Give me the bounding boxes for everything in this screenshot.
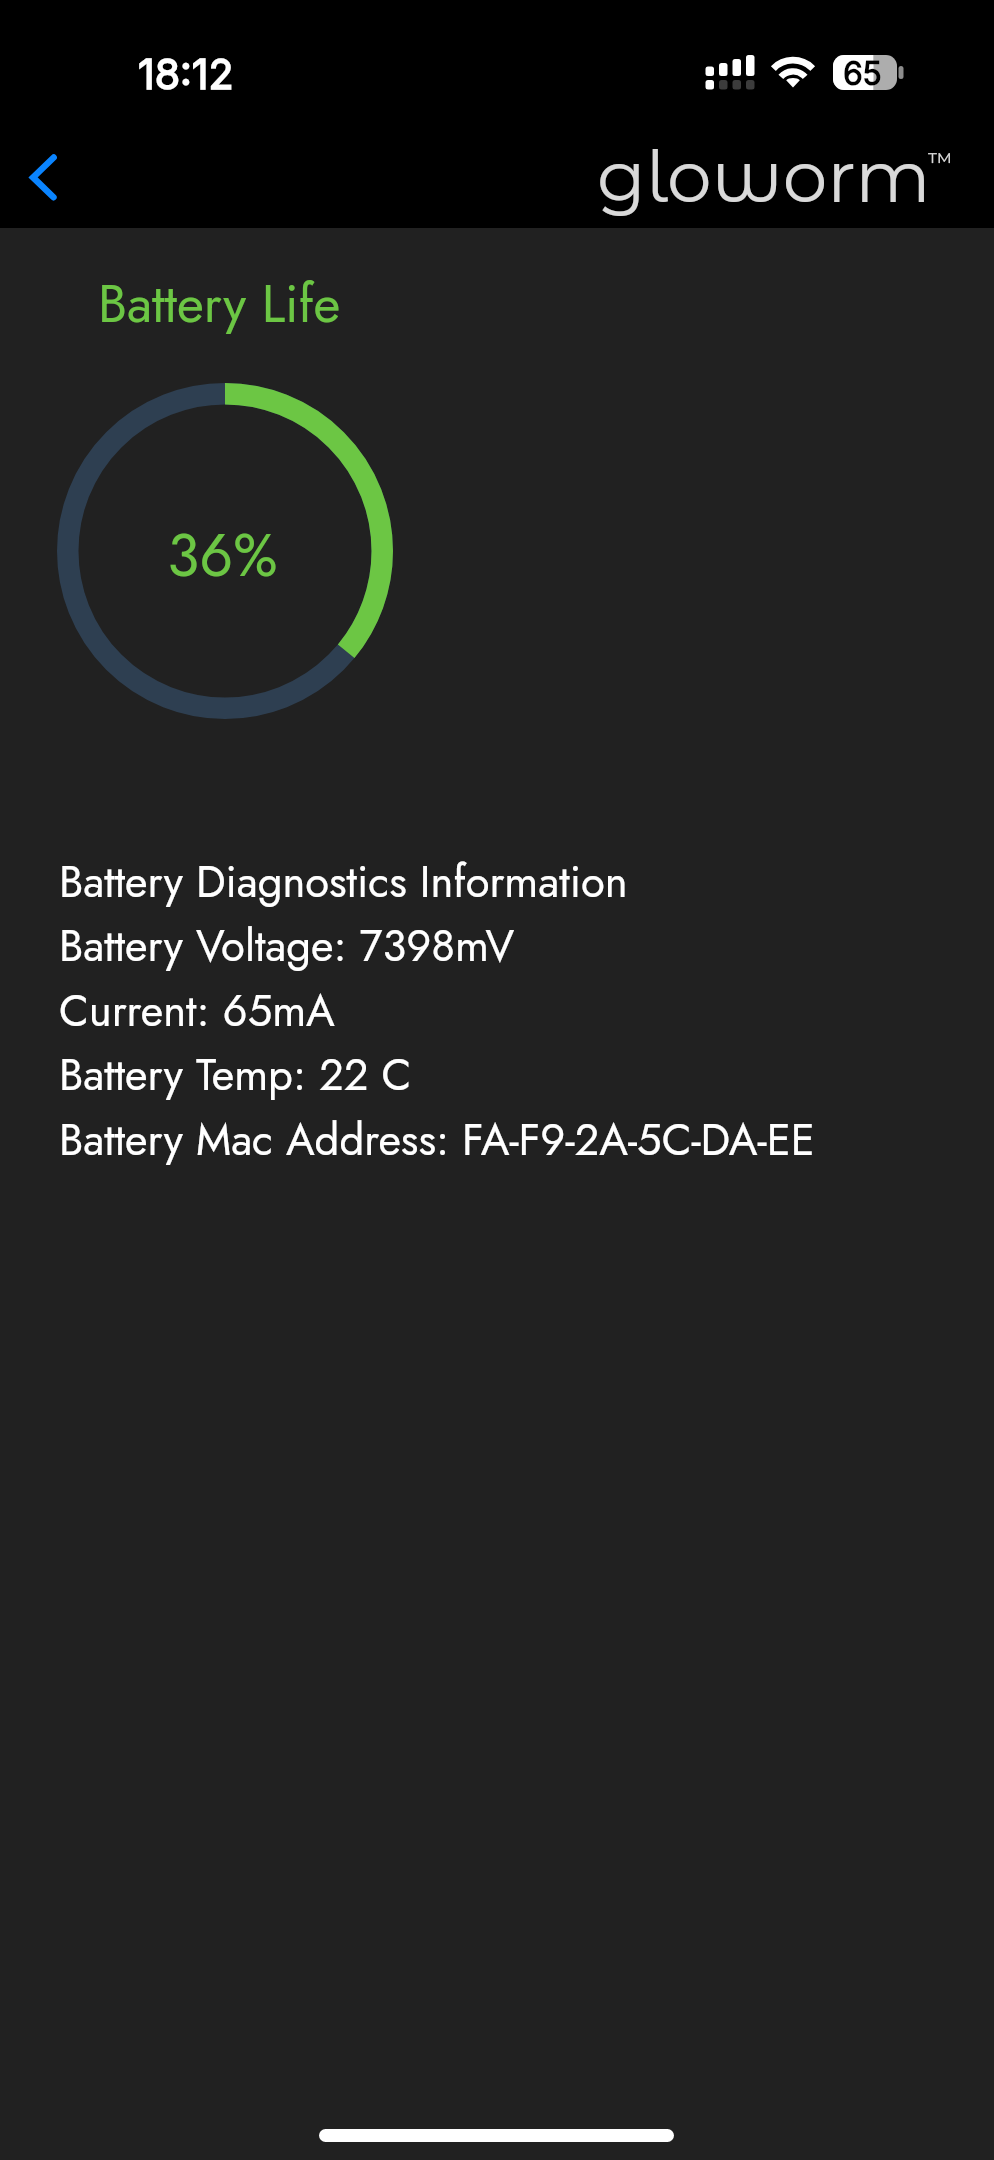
staticText: gloworm xyxy=(597,133,931,220)
staticText: Battery Voltage: 7398mV xyxy=(59,914,515,977)
staticText: Battery Diagnostics Information xyxy=(59,850,628,913)
staticText: 65 xyxy=(843,54,882,93)
staticText: Battery Life xyxy=(98,266,341,341)
button[interactable]: Back xyxy=(0,128,92,204)
staticText: Battery Temp: 22 C xyxy=(59,1043,412,1106)
staticText: Current: 65mA xyxy=(59,979,335,1042)
staticText: Battery Mac Address: FA-F9-2A-5C-DA-EE xyxy=(59,1108,815,1171)
staticText: 36% xyxy=(167,513,278,598)
staticText: 18:12 xyxy=(138,49,234,99)
staticText: ™ xyxy=(928,147,953,176)
